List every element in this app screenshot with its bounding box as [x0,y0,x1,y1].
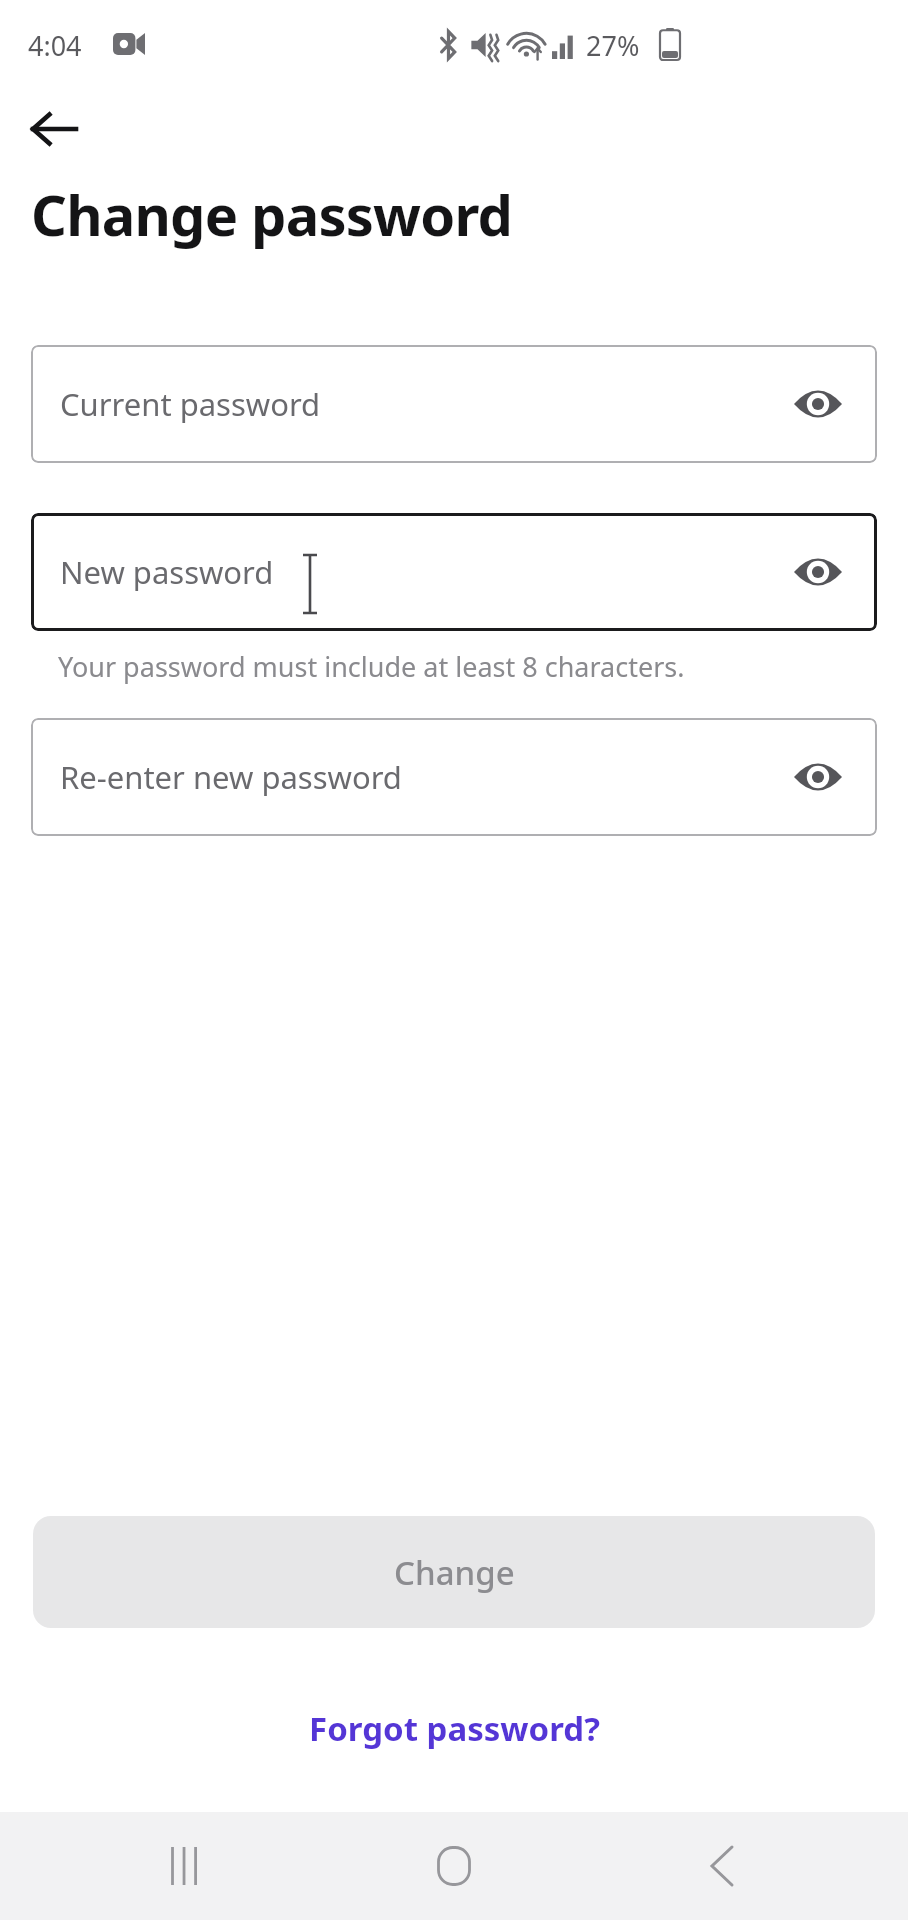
button[interactable]: Home [414,1826,494,1906]
staticText: Your password must include at least 8 ch… [58,648,685,685]
button[interactable]: Show current password [779,365,857,443]
button[interactable]: New password [31,513,877,631]
button[interactable]: Forgot password? [254,1690,654,1766]
button[interactable]: Recent apps [146,1826,226,1906]
staticText: New password [60,551,274,593]
staticText: Re-enter new password [60,756,402,798]
button[interactable]: Show re-entered password [779,738,857,816]
button[interactable]: Back [8,94,100,164]
button[interactable]: Current password [31,345,877,463]
staticText: Forgot password? [309,1706,600,1751]
button[interactable]: Re-enter new password [31,718,877,836]
button[interactable]: Change [33,1516,875,1628]
staticText: 27% [586,27,640,64]
button[interactable]: Show new password [779,533,857,611]
button[interactable]: Back [682,1826,762,1906]
staticText: Change [394,1550,515,1595]
staticText: Change password [31,176,513,252]
staticText: Current password [60,383,321,425]
staticText: 4:04 [28,27,82,64]
